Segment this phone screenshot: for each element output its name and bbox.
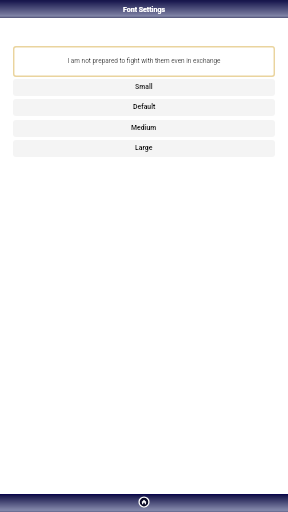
staticText: Small — [135, 83, 153, 91]
button[interactable]: Large — [13, 140, 275, 157]
button[interactable]: Home — [135, 494, 153, 512]
staticText: Large — [135, 144, 153, 152]
button[interactable]: Font Settings — [0, 0, 288, 18]
button[interactable]: Small — [13, 79, 275, 96]
staticText: Medium — [131, 124, 157, 132]
staticText: Default — [133, 103, 156, 111]
button[interactable]: Medium — [13, 120, 275, 137]
staticText: I am not prepared to fight with them eve… — [67, 57, 221, 65]
staticText: Font Settings — [123, 6, 165, 14]
button[interactable]: Default — [13, 99, 275, 116]
